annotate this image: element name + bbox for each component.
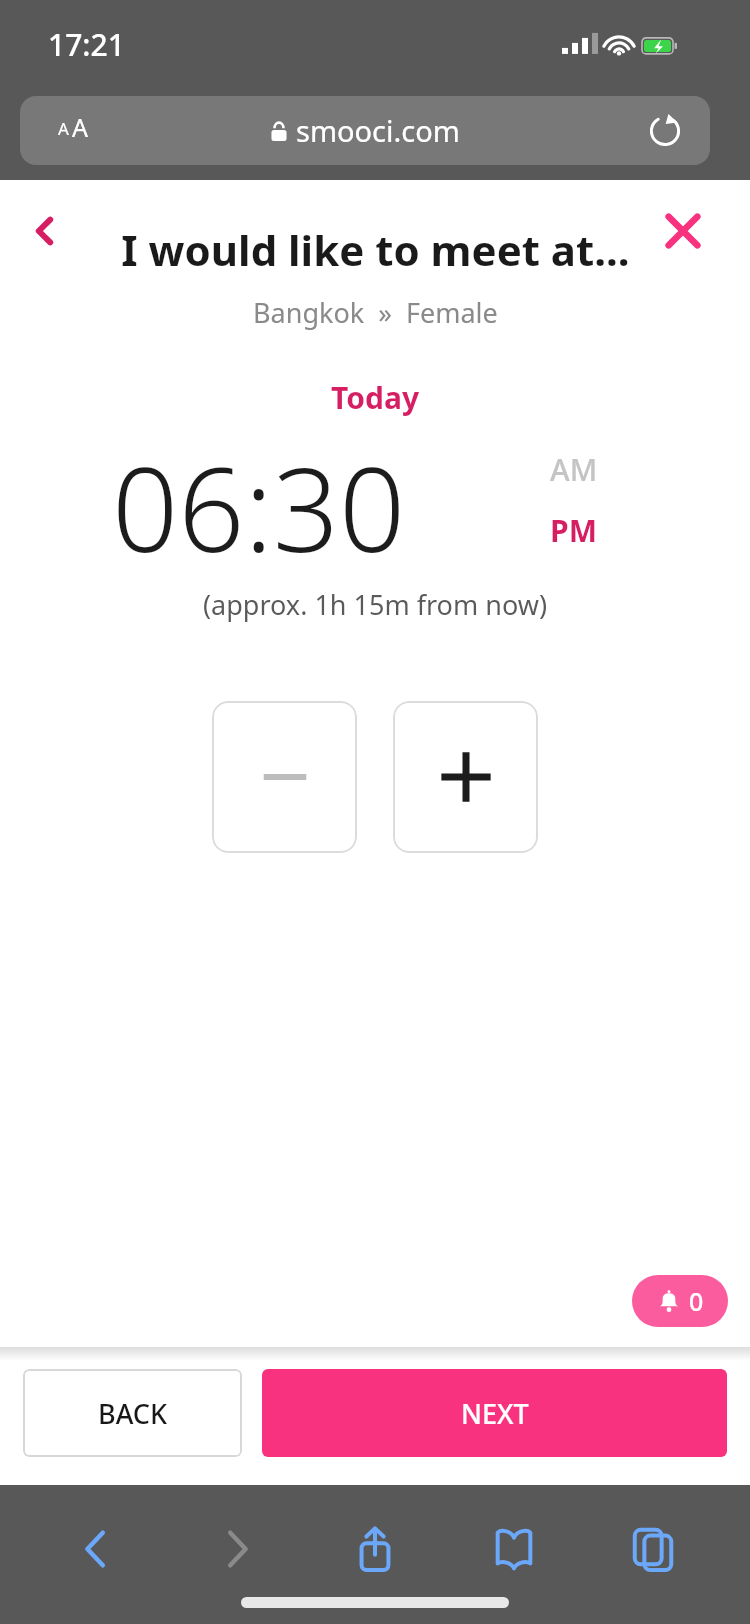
staticText: 0 (689, 1284, 704, 1318)
staticText: 17:21 (48, 24, 125, 65)
staticText: AM (550, 449, 598, 490)
button[interactable]: Increase time (393, 701, 538, 853)
staticText: BACK (98, 1395, 168, 1432)
staticText: PM (550, 510, 597, 551)
staticText: Bangkok » Female (253, 294, 498, 331)
button[interactable]: Decrease time (212, 701, 357, 853)
other: Reload (648, 114, 682, 148)
button[interactable]: AM (550, 449, 598, 490)
staticText: A (58, 117, 69, 140)
staticText: A (72, 110, 88, 144)
staticText: smooci.com (296, 111, 460, 150)
button[interactable]: Back (55, 1507, 139, 1591)
staticText: (approx. 1h 15m from now) (203, 586, 548, 623)
button[interactable]: Close (648, 196, 718, 266)
staticText: 06:30 (112, 428, 406, 568)
button[interactable]: A (20, 96, 710, 165)
button[interactable]: Tabs (611, 1507, 695, 1591)
button[interactable]: Notifications (632, 1275, 728, 1327)
button[interactable]: Share (333, 1507, 417, 1591)
button[interactable]: Forward (194, 1507, 278, 1591)
staticText: I would like to meet at... (121, 221, 630, 278)
button[interactable]: Back (10, 196, 80, 266)
staticText: Today (331, 377, 420, 418)
button[interactable]: BACK (23, 1369, 242, 1457)
button[interactable]: Bookmarks (472, 1507, 556, 1591)
staticText: NEXT (461, 1395, 529, 1432)
button[interactable]: PM (550, 510, 597, 551)
button[interactable]: NEXT (262, 1369, 727, 1457)
